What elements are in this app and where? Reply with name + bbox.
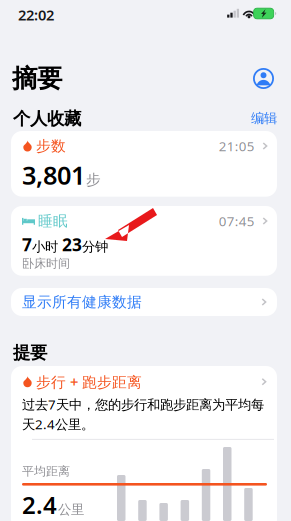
button[interactable]: 步数 (11, 131, 277, 197)
staticText: 提要 (13, 342, 47, 363)
staticText: 步数 (36, 137, 66, 155)
staticText: 7 (22, 233, 32, 256)
button[interactable]: 显示所有健康数据 (11, 288, 277, 316)
staticText: 22:02 (18, 5, 54, 24)
staticText: 2.4 (22, 489, 57, 520)
staticText: 23 (62, 233, 82, 256)
staticText: 平均距离 (22, 464, 70, 479)
staticText: 3,801 (22, 158, 85, 192)
staticText: 小时 (32, 239, 62, 255)
button[interactable]: 步行 + 跑步距离 (11, 366, 277, 521)
staticText: 分钟 (82, 239, 108, 255)
staticText: 公里 (58, 501, 84, 518)
staticText: 睡眠 (38, 212, 68, 230)
staticText: 天2.4公里。 (22, 415, 94, 433)
staticText: 步 (86, 171, 101, 189)
staticText: 21:05 (219, 137, 255, 155)
staticText: 步行 + 跑步距离 (36, 372, 142, 391)
button[interactable]: 编辑 (251, 110, 277, 126)
staticText: 卧床时间 (22, 256, 70, 271)
staticText: 编辑 (251, 110, 277, 126)
staticText: 个人收藏 (13, 108, 81, 129)
button[interactable]: 个人资料 (253, 68, 274, 89)
button[interactable]: 睡眠 (11, 206, 277, 276)
staticText: 07:45 (219, 212, 255, 230)
staticText: 摘要 (12, 63, 62, 94)
staticText: 显示所有健康数据 (22, 293, 142, 311)
staticText: 过去7天中，您的步行和跑步距离为平均每 (22, 395, 264, 413)
